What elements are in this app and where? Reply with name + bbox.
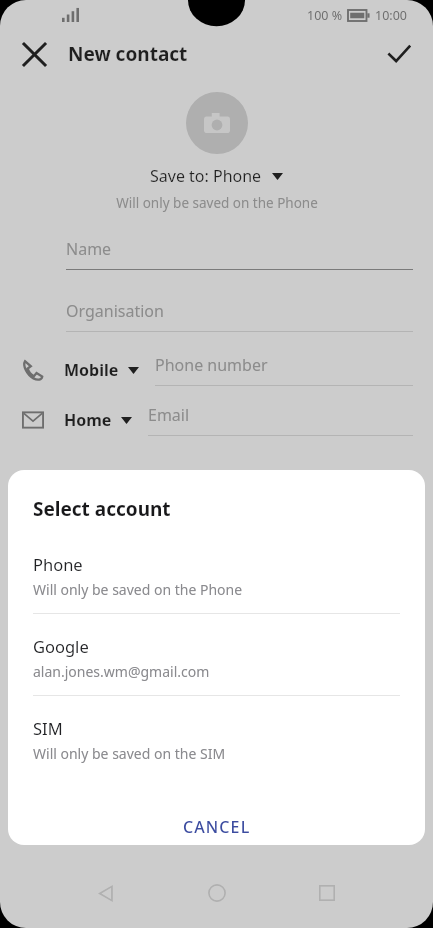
- staticText: 100 %: [307, 7, 343, 24]
- other: Phone: [22, 359, 44, 381]
- staticText: alan.jones.wm@gmail.com: [33, 662, 210, 681]
- button[interactable]: Close: [12, 32, 56, 76]
- staticText: Google: [33, 635, 89, 657]
- button[interactable]: Organisation: [66, 300, 413, 332]
- button[interactable]: Home: [197, 880, 237, 906]
- staticText: 10:00: [375, 7, 407, 24]
- button[interactable]: Add photo: [186, 92, 248, 154]
- staticText: CANCEL: [183, 816, 251, 838]
- button[interactable]: Save contact: [377, 32, 421, 76]
- staticText: SIM: [33, 717, 63, 739]
- staticText: Select account: [33, 496, 171, 522]
- staticText: New contact: [68, 41, 188, 67]
- button[interactable]: Back: [86, 880, 126, 906]
- staticText: Will only be saved on the Phone: [33, 580, 243, 599]
- button[interactable]: Google: [8, 633, 425, 695]
- staticText: Email: [148, 404, 190, 426]
- staticText: Will only be saved on the SIM: [33, 744, 226, 763]
- button[interactable]: Phone: [8, 551, 425, 613]
- staticText: Phone number: [155, 354, 268, 376]
- button[interactable]: CANCEL: [8, 809, 425, 845]
- button[interactable]: Phone: [22, 354, 413, 386]
- staticText: Name: [66, 238, 112, 260]
- button[interactable]: Recent apps: [307, 880, 347, 906]
- staticText: Organisation: [66, 300, 164, 322]
- staticText: Phone: [33, 553, 83, 575]
- button[interactable]: Name: [66, 238, 413, 270]
- staticText: Mobile: [64, 359, 119, 381]
- other: Email: [22, 409, 44, 431]
- button[interactable]: SIM: [8, 715, 425, 777]
- staticText: Will only be saved on the Phone: [116, 194, 318, 212]
- staticText: Save to: Phone: [150, 165, 262, 187]
- button[interactable]: Email: [22, 404, 413, 436]
- button[interactable]: Save to: Phone: [150, 165, 283, 187]
- staticText: Home: [64, 409, 112, 431]
